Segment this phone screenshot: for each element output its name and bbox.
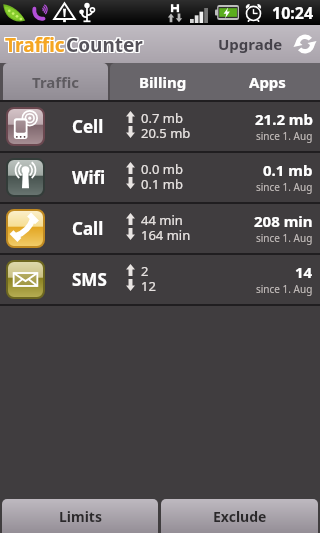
button[interactable]: SMS [0, 255, 320, 304]
staticText: Traffic [6, 33, 66, 59]
staticText: SMS [72, 268, 126, 291]
staticText: Exclude [213, 507, 267, 526]
staticText: Counter [67, 31, 144, 57]
staticText: Counter [66, 32, 143, 58]
staticText: Traffic [4, 31, 64, 57]
staticText: Limits [59, 507, 102, 526]
button[interactable]: Call [0, 204, 320, 253]
staticText: Traffic [5, 32, 65, 58]
staticText: 14 [295, 262, 313, 282]
button[interactable]: Limits [2, 499, 158, 533]
staticText: Counter [65, 32, 142, 58]
button[interactable]: Exclude [161, 499, 318, 533]
staticText: 2 [141, 262, 149, 277]
staticText: Counter [67, 33, 144, 59]
staticText: Traffic [6, 31, 66, 57]
staticText: 208 min [254, 211, 313, 231]
staticText: Apps [249, 72, 286, 92]
button[interactable]: Upgrade [211, 25, 290, 63]
staticText: Traffic [5, 33, 65, 59]
staticText: Upgrade [218, 34, 283, 54]
button[interactable]: Billing [110, 63, 215, 100]
staticText: since 1. Aug [256, 180, 313, 194]
staticText: 12 [141, 277, 156, 292]
staticText: 21.2 mb [255, 109, 313, 129]
button[interactable]: Refresh [290, 25, 320, 63]
staticText: Traffic [6, 32, 66, 58]
staticText: 20.5 mb [141, 124, 191, 139]
staticText: Counter [65, 33, 142, 59]
staticText: Traffic [5, 31, 65, 57]
staticText: 164 min [141, 226, 191, 241]
staticText: 0.0 mb [141, 160, 183, 175]
staticText: Billing [139, 72, 187, 92]
staticText: Counter [66, 33, 143, 59]
staticText: Counter [67, 32, 144, 58]
button[interactable]: Apps [215, 63, 320, 100]
button[interactable]: Wifi [0, 153, 320, 202]
button[interactable]: Traffic [3, 63, 108, 100]
button[interactable]: Cell [0, 102, 320, 151]
staticText: 10:24 [272, 2, 314, 24]
staticText: Cell [72, 115, 126, 138]
staticText: 44 min [141, 211, 183, 226]
staticText: 0.1 mb [141, 175, 183, 190]
staticText: Counter [66, 31, 143, 57]
staticText: 0.1 mb [263, 160, 313, 180]
staticText: 0.7 mb [141, 109, 183, 124]
staticText: since 1. Aug [256, 129, 313, 143]
staticText: Wifi [72, 166, 126, 189]
staticText: Traffic [32, 72, 80, 92]
staticText: Counter [65, 31, 142, 57]
staticText: since 1. Aug [256, 282, 313, 296]
staticText: Call [72, 217, 126, 240]
staticText: Traffic [4, 33, 64, 59]
staticText: since 1. Aug [256, 231, 313, 245]
staticText: Traffic [4, 32, 64, 58]
